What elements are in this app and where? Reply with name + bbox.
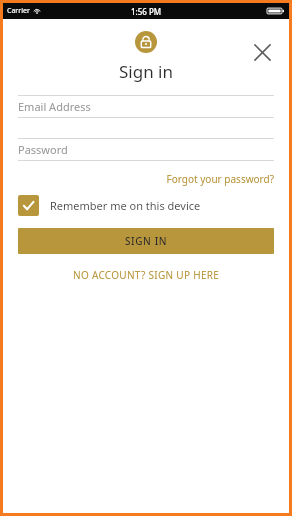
button[interactable]: Password bbox=[18, 139, 274, 160]
staticText: Password bbox=[18, 142, 68, 157]
button[interactable]: Remember me on this device bbox=[18, 195, 274, 216]
staticText: Forgot your password? bbox=[166, 172, 274, 186]
staticText: Remember me on this device bbox=[50, 198, 201, 213]
staticText: SIGN IN bbox=[125, 234, 168, 248]
button[interactable]: Close bbox=[245, 35, 279, 69]
staticText: Sign in bbox=[119, 60, 173, 83]
button[interactable]: Email Address bbox=[18, 96, 274, 117]
staticText: Email Address bbox=[18, 99, 91, 114]
button[interactable]: SIGN IN bbox=[18, 228, 274, 254]
staticText: Carrier bbox=[7, 6, 30, 16]
staticText: NO ACCOUNT? SIGN UP HERE bbox=[73, 268, 220, 282]
button[interactable]: NO ACCOUNT? SIGN UP HERE bbox=[18, 268, 274, 282]
button[interactable]: Forgot your password? bbox=[18, 172, 274, 186]
staticText: 1:56 PM bbox=[131, 6, 162, 17]
